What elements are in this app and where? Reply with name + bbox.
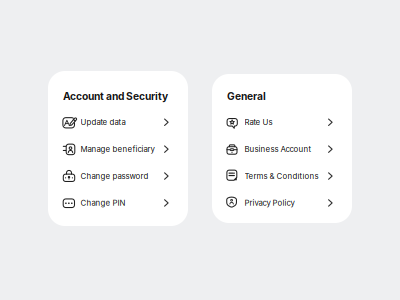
staticText: Change PIN [80, 198, 125, 208]
button[interactable]: Change password [48, 163, 188, 189]
button[interactable]: Privacy Policy [212, 189, 352, 216]
staticText: General [227, 90, 266, 102]
button[interactable]: Update data [48, 109, 188, 136]
button[interactable]: Manage beneficiary [48, 136, 188, 163]
staticText: Privacy Policy [244, 198, 294, 208]
staticText: Update data [80, 117, 125, 127]
staticText: Terms & Conditions [244, 171, 318, 181]
staticText: Manage beneficiary [80, 144, 154, 154]
button[interactable]: Change PIN [48, 189, 188, 216]
button[interactable]: Terms & Conditions [212, 163, 352, 189]
staticText: Account and Security [63, 90, 168, 102]
staticText: Change password [80, 171, 148, 181]
button[interactable]: Rate Us [212, 109, 352, 136]
staticText: Business Account [244, 144, 311, 154]
button[interactable]: Business Account [212, 136, 352, 163]
staticText: Rate Us [244, 117, 272, 127]
